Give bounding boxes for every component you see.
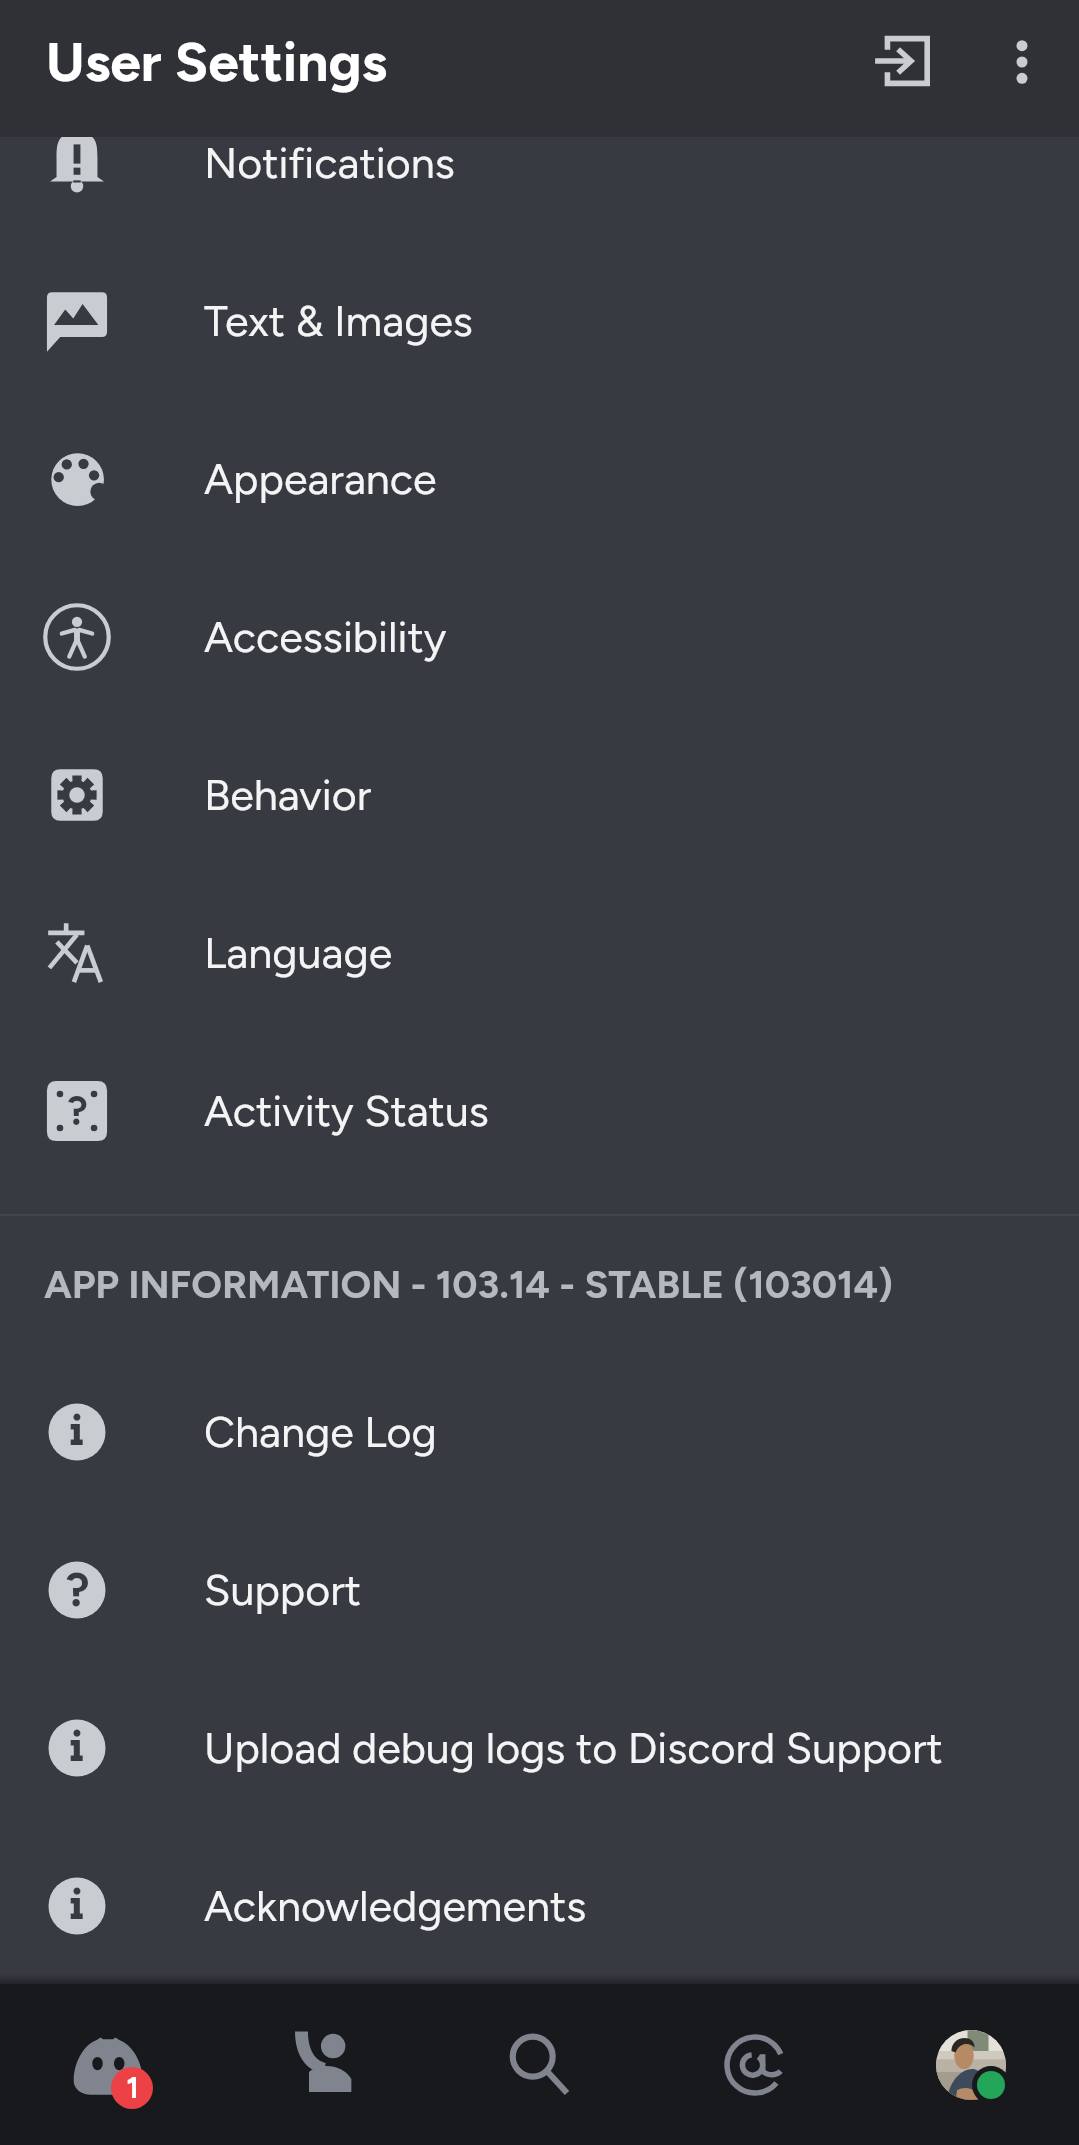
staticText: i — [69, 1406, 85, 1456]
button[interactable]: Mentions — [647, 1984, 863, 2145]
button[interactable]: ? — [0, 1511, 1079, 1669]
staticText: Language — [204, 927, 393, 979]
staticText: Appearance — [204, 453, 437, 505]
button[interactable]: Notifications — [0, 84, 1079, 242]
button[interactable]: Friends — [215, 1984, 431, 2145]
staticText: Accessibility — [204, 611, 447, 663]
button[interactable]: Language — [0, 874, 1079, 1032]
button[interactable]: i — [0, 1669, 1079, 1827]
button[interactable]: More options — [964, 4, 1079, 119]
button[interactable]: Home — [0, 1984, 215, 2145]
staticText: Acknowledgements — [204, 1880, 587, 1932]
staticText: Activity Status — [204, 1085, 489, 1137]
button[interactable]: Behavior — [0, 716, 1079, 874]
staticText: Upload debug logs to Discord Support — [204, 1722, 943, 1774]
button[interactable]: i — [0, 1353, 1079, 1511]
staticText: User Settings — [46, 29, 388, 95]
staticText: i — [69, 1722, 85, 1772]
staticText: ? — [67, 1087, 88, 1135]
button[interactable]: Accessibility — [0, 558, 1079, 716]
button[interactable]: ? — [0, 1032, 1079, 1190]
button[interactable]: Search — [431, 1984, 647, 2145]
staticText: 1 — [126, 2070, 139, 2105]
button[interactable]: Appearance — [0, 400, 1079, 558]
staticText: Support — [204, 1564, 361, 1616]
button[interactable]: Log out — [840, 0, 964, 123]
button[interactable]: Text & Images — [0, 242, 1079, 400]
button[interactable]: i — [0, 1827, 1079, 1985]
staticText: APP INFORMATION - 103.14 - STABLE (10301… — [44, 1261, 893, 1308]
staticText: Behavior — [204, 769, 372, 821]
staticText: Change Log — [204, 1406, 437, 1458]
staticText: i — [69, 1880, 85, 1930]
staticText: Notifications — [204, 137, 455, 189]
button[interactable]: Profile — [863, 1984, 1079, 2145]
staticText: ? — [65, 1561, 90, 1617]
staticText: Text & Images — [204, 295, 473, 347]
